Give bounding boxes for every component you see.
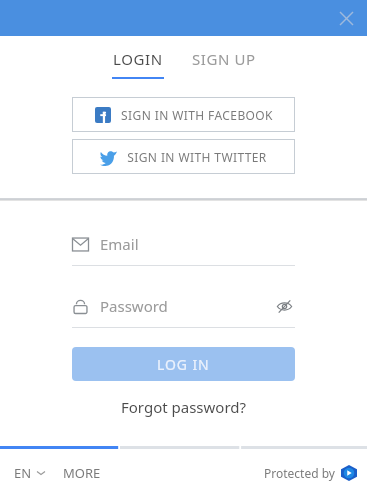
staticText: LOGIN [113, 49, 163, 69]
staticText: Email [100, 234, 139, 254]
staticText: SIGN UP [192, 49, 256, 69]
button[interactable]: LOGIN [98, 36, 178, 79]
button[interactable]: SIGN IN WITH FACEBOOK [72, 97, 295, 132]
button[interactable]: Close [331, 3, 361, 33]
staticText: EN [14, 464, 32, 482]
staticText: Password [100, 296, 168, 316]
button[interactable]: EN [12, 460, 47, 486]
button[interactable]: MORE [61, 460, 103, 486]
staticText: SIGN IN WITH TWITTER [127, 149, 267, 165]
button[interactable]: SIGN UP [178, 36, 270, 69]
button[interactable]: Protected by [264, 465, 357, 481]
staticText: Forgot password? [121, 397, 247, 417]
staticText: MORE [63, 464, 101, 482]
staticText: SIGN IN WITH FACEBOOK [121, 107, 273, 123]
button[interactable]: Password [72, 294, 295, 318]
button[interactable]: Email [72, 232, 295, 256]
button[interactable]: Forgot password? [113, 395, 255, 419]
button[interactable]: Show password [273, 295, 295, 317]
staticText: LOG IN [157, 355, 210, 374]
button[interactable]: SIGN IN WITH TWITTER [72, 139, 295, 174]
staticText: Protected by [264, 465, 335, 481]
button[interactable]: LOG IN [72, 347, 295, 381]
